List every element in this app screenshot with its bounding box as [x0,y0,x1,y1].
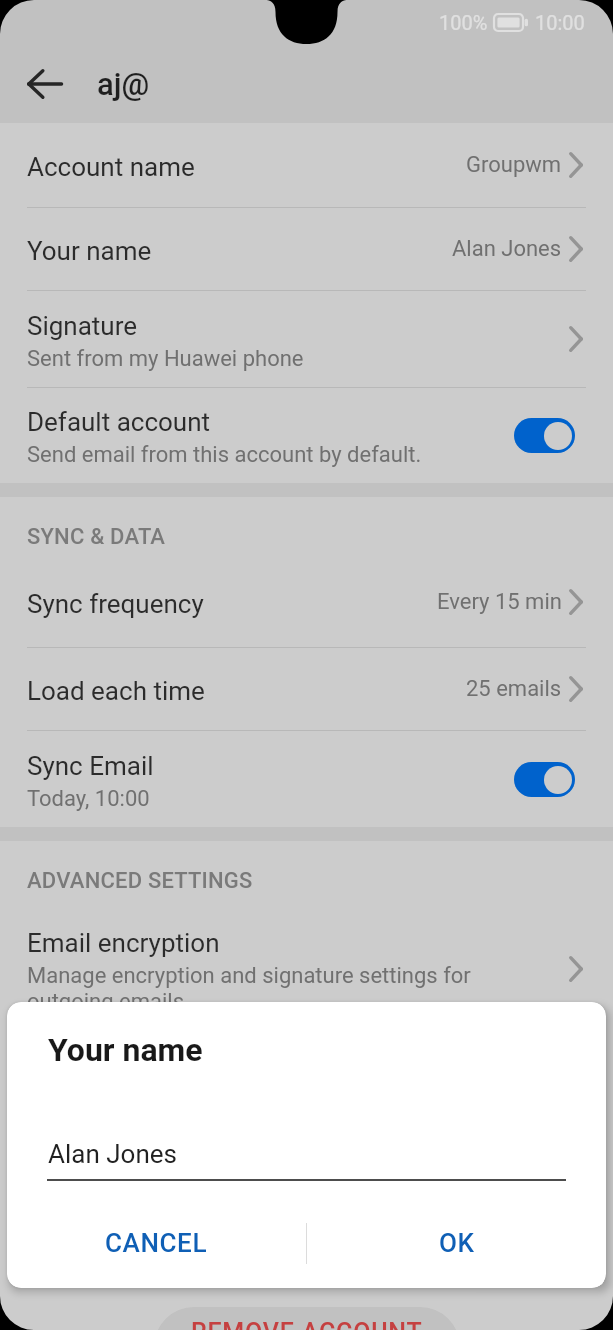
staticText: Manage encryption and signature settings… [27,963,489,1014]
staticText: aj@ [97,66,150,102]
staticText: CANCEL [105,1228,208,1258]
staticText: Sync Email [27,751,154,781]
staticText: Alan Jones [452,236,562,262]
button[interactable]: Toggle [514,762,575,797]
staticText: 25 emails [466,676,562,702]
staticText: Email encryption [27,928,220,958]
button[interactable]: Signature [0,291,613,387]
button[interactable]: Default account [0,388,613,483]
staticText: Today, 10:00 [27,786,150,812]
staticText: Groupwm [466,152,562,178]
staticText: Every 15 min [437,589,562,615]
button[interactable]: Sync Email [0,731,613,827]
staticText: 100% [439,11,488,34]
button[interactable]: REMOVE ACCOUNT [154,1307,460,1330]
staticText: Send email from this account by default. [27,442,422,468]
button[interactable]: CANCEL [7,1213,306,1273]
staticText: Your name [27,236,152,266]
staticText: OK [439,1228,475,1258]
button[interactable]: OK [307,1213,606,1273]
staticText: SYNC & DATA [27,524,166,550]
staticText: Sync frequency [27,589,204,619]
staticText: Account name [27,152,195,182]
button[interactable]: Toggle [514,418,575,453]
staticText: Your name [48,1031,203,1069]
button[interactable]: Your name [0,208,613,290]
button[interactable]: Load each time [0,648,613,730]
button[interactable]: Sync frequency [0,557,613,647]
staticText: 10:00 [535,11,585,34]
staticText: Sent from my Huawei phone [27,346,304,372]
staticText: Load each time [27,676,205,706]
staticText: REMOVE ACCOUNT [191,1318,423,1330]
staticText: Alan Jones [48,1139,177,1169]
staticText: Signature [27,311,138,341]
button[interactable]: Email encryption [0,901,613,1001]
button[interactable]: Account name [0,123,613,207]
button[interactable]: Back [14,53,76,115]
staticText: Default account [27,407,211,437]
staticText: ADVANCED SETTINGS [27,868,253,894]
